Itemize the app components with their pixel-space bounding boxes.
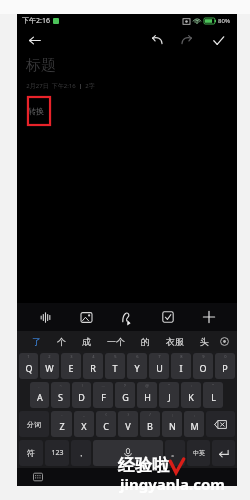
staticText: 了	[32, 336, 41, 347]
button[interactable]: 一个	[99, 331, 133, 351]
staticText: 个	[57, 336, 66, 347]
staticText: 标题	[26, 56, 56, 75]
button[interactable]: Space	[93, 440, 163, 466]
button[interactable]: ？	[115, 382, 135, 408]
staticText: E	[68, 362, 74, 374]
staticText: 8	[180, 354, 183, 359]
staticText: 80%	[218, 17, 230, 25]
button[interactable]: 中英	[187, 440, 210, 466]
staticText: 4	[92, 354, 95, 359]
button[interactable]: “	[159, 382, 179, 408]
staticText: 0	[224, 354, 227, 359]
button[interactable]: Switch keyboard	[31, 470, 45, 484]
button[interactable]: Checklist	[155, 304, 181, 330]
staticText: /	[149, 412, 151, 417]
button[interactable]: ；	[162, 411, 182, 437]
button[interactable]: …	[93, 382, 113, 408]
staticText: 。	[171, 448, 179, 458]
button[interactable]: @	[137, 382, 157, 408]
button[interactable]: /	[140, 411, 160, 437]
button[interactable]: 0	[215, 353, 235, 379]
staticText: 2	[48, 354, 51, 359]
button[interactable]: Draw	[114, 304, 140, 330]
staticText: ，	[192, 412, 196, 417]
staticText: U	[156, 362, 163, 374]
button[interactable]: Backspace	[206, 411, 235, 437]
button[interactable]: 衣服	[158, 331, 192, 351]
staticText: 下午2:16	[22, 16, 50, 26]
staticText: 6	[136, 354, 139, 359]
button[interactable]: -	[51, 411, 72, 437]
staticText: -	[61, 412, 63, 417]
button[interactable]: ：	[181, 382, 201, 408]
staticText: I	[179, 362, 183, 374]
staticText: 5	[114, 354, 117, 359]
button[interactable]: 了	[23, 331, 49, 351]
button[interactable]: )	[118, 411, 138, 437]
button[interactable]: Undo	[147, 30, 167, 50]
button[interactable]: 头	[192, 331, 217, 351]
staticText: 头	[200, 336, 209, 347]
staticText: R	[90, 362, 96, 374]
staticText: 中英	[193, 449, 205, 457]
button[interactable]: ！	[72, 382, 91, 408]
staticText: 转换	[28, 106, 44, 116]
button[interactable]: Redo	[177, 30, 197, 50]
staticText: O	[199, 362, 207, 374]
staticText: ；	[170, 412, 174, 417]
staticText: X	[81, 420, 87, 432]
button[interactable]: 2	[40, 353, 59, 379]
button[interactable]: 。	[165, 440, 185, 466]
button[interactable]: Audio	[32, 304, 58, 330]
staticText: 123	[51, 448, 64, 458]
staticText: A	[37, 391, 43, 403]
button[interactable]: 个	[49, 331, 74, 351]
button[interactable]: _	[74, 411, 94, 437]
button[interactable]: ，	[184, 411, 204, 437]
button[interactable]: 9	[193, 353, 213, 379]
button[interactable]: 分词	[19, 411, 49, 437]
button[interactable]: ～	[51, 382, 70, 408]
staticText: L	[211, 391, 216, 403]
button[interactable]: 、	[30, 382, 49, 408]
button[interactable]: 8	[171, 353, 191, 379]
button[interactable]: Enter	[212, 440, 235, 466]
button[interactable]: 123	[45, 440, 69, 466]
staticText: “	[168, 383, 170, 388]
button[interactable]: 1	[19, 353, 38, 379]
button[interactable]: More candidates	[217, 331, 231, 351]
button[interactable]: 7	[149, 353, 169, 379]
staticText: B	[147, 420, 153, 432]
button[interactable]: Back	[23, 29, 45, 51]
staticText: 9	[202, 354, 205, 359]
staticText: 衣服	[166, 336, 184, 347]
staticText: J	[168, 391, 171, 403]
button[interactable]: (	[96, 411, 116, 437]
staticText: K	[188, 391, 194, 403]
button[interactable]: 成	[74, 331, 99, 351]
button[interactable]: 符	[19, 440, 43, 466]
staticText: 一个	[107, 336, 125, 347]
button[interactable]: ，	[71, 440, 91, 466]
staticText: N	[169, 420, 176, 432]
staticText: 分词	[27, 420, 41, 429]
button[interactable]: ”	[203, 382, 223, 408]
button[interactable]: 4	[83, 353, 103, 379]
button[interactable]: Add	[196, 304, 222, 330]
button[interactable]: 5	[105, 353, 125, 379]
staticText: _	[83, 412, 85, 417]
staticText: T	[112, 362, 118, 374]
staticText: 2月27日 下午2:16	[26, 82, 76, 90]
button[interactable]: Done	[207, 29, 229, 51]
staticText: 的	[141, 336, 150, 347]
button[interactable]: 6	[127, 353, 147, 379]
button[interactable]: 3	[61, 353, 81, 379]
staticText: Q	[25, 362, 33, 374]
staticText: F	[101, 391, 106, 403]
button[interactable]: Image	[73, 304, 99, 330]
staticText: 符	[27, 448, 35, 458]
staticText: 7	[158, 354, 161, 359]
button[interactable]: 的	[133, 331, 158, 351]
